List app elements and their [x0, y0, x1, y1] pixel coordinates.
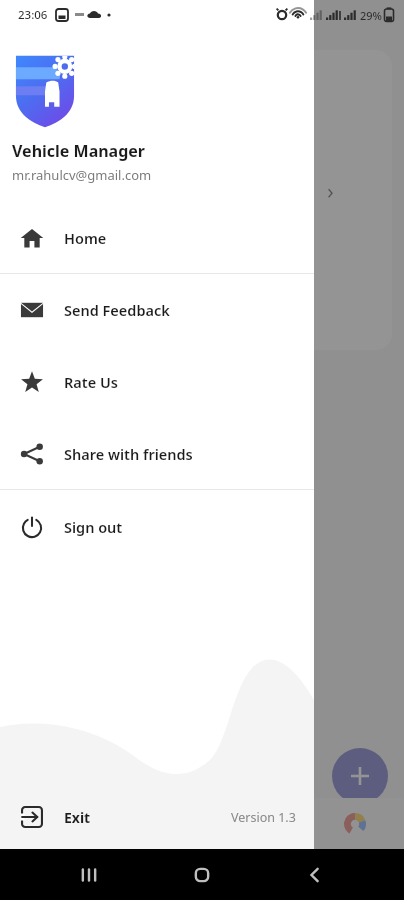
staticText: Share with friends [64, 444, 193, 464]
staticText: Vehicle Manager [12, 140, 146, 162]
staticText: Rate Us [64, 372, 118, 392]
button[interactable]: Add vehicle [332, 748, 388, 804]
staticText: Exit [64, 808, 91, 827]
staticText: › [327, 175, 334, 205]
button[interactable]: Exit [0, 785, 314, 849]
staticText: Sign out [64, 517, 123, 537]
staticText: mr.rahulcv@gmail.com [12, 166, 152, 184]
staticText: Send Feedback [64, 300, 170, 320]
button[interactable]: Sign out [0, 505, 314, 549]
button[interactable]: Share with friends [0, 432, 314, 476]
staticText: Version 1.3 [231, 809, 296, 826]
button[interactable]: Rate Us [0, 360, 314, 404]
button[interactable]: Home [0, 216, 314, 260]
button[interactable]: Send Feedback [0, 288, 314, 332]
staticText: 23:06 [18, 7, 48, 23]
staticText: 29% [360, 8, 382, 23]
staticText: Home [64, 228, 107, 248]
